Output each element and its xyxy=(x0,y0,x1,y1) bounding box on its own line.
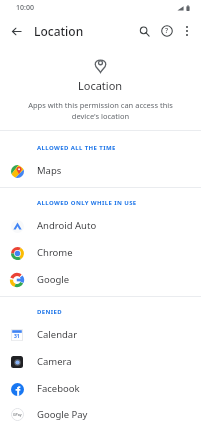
button[interactable]: GPay xyxy=(0,402,201,426)
button[interactable]: Facebook xyxy=(0,375,201,402)
staticText: Google Pay xyxy=(37,408,88,421)
staticText: 10:00 xyxy=(16,3,34,13)
staticText: Location xyxy=(78,78,123,93)
staticText: DENIED xyxy=(37,308,63,316)
staticText: ALLOWED ONLY WHILE IN USE xyxy=(37,199,137,207)
button[interactable]: More options xyxy=(177,21,197,41)
staticText: Chrome xyxy=(37,246,73,259)
button[interactable]: Camera xyxy=(0,348,201,375)
button[interactable]: Search xyxy=(134,21,154,41)
staticText: Camera xyxy=(37,355,72,368)
staticText: Maps xyxy=(37,164,62,177)
button[interactable]: 31 xyxy=(0,321,201,348)
staticText: ? xyxy=(165,26,169,36)
button[interactable]: Google xyxy=(0,266,201,293)
staticText: Facebook xyxy=(37,382,80,395)
staticText: Apps with this permission can access thi… xyxy=(20,100,181,121)
staticText: Android Auto xyxy=(37,219,97,232)
button[interactable]: Chrome xyxy=(0,239,201,266)
staticText: GPay xyxy=(13,412,22,417)
staticText: Calendar xyxy=(37,328,78,341)
button[interactable]: Android Auto xyxy=(0,212,201,239)
staticText: 31 xyxy=(14,333,20,340)
staticText: ALLOWED ALL THE TIME xyxy=(37,144,116,152)
button[interactable]: Help xyxy=(157,21,177,41)
button[interactable]: Back xyxy=(7,22,25,40)
button[interactable]: Maps xyxy=(0,157,201,184)
staticText: Location xyxy=(34,23,84,39)
staticText: Google xyxy=(37,273,70,286)
